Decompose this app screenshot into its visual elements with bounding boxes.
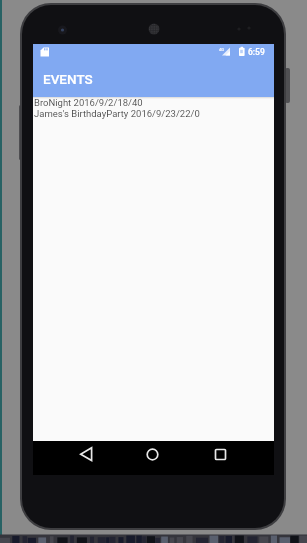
staticText: BroNight 2016/9/2/18/40: [34, 97, 143, 108]
staticText: EVENTS: [43, 71, 93, 87]
button[interactable]: BroNight 2016/9/2/18/40: [33, 97, 274, 108]
button[interactable]: James's BirthdayParty 2016/9/23/22/0: [33, 108, 274, 119]
staticText: 6:59: [248, 47, 265, 57]
staticText: James's BirthdayParty 2016/9/23/22/0: [34, 108, 200, 119]
button[interactable]: [71, 444, 96, 472]
button[interactable]: [208, 444, 233, 472]
staticText: 4G: [219, 47, 224, 52]
button[interactable]: [140, 444, 165, 472]
